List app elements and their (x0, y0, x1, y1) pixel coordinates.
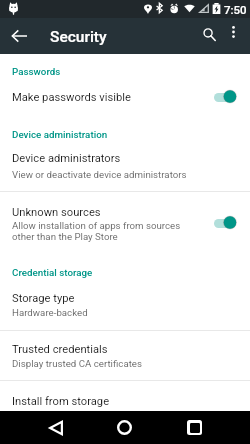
button[interactable]: Unknown sources (12, 206, 101, 219)
button: Passwords (0, 66, 250, 88)
button[interactable]: Storage type (12, 292, 75, 305)
staticText: Passwords (12, 66, 61, 77)
button[interactable]: Make passwords visible (12, 91, 131, 104)
staticText: Allow installation of apps from sources … (12, 220, 181, 243)
button: Credential storage (0, 267, 250, 289)
button[interactable]: Back (36, 411, 76, 444)
button[interactable]: Device administrators (12, 152, 121, 165)
button[interactable]: Toggle (214, 217, 237, 230)
button[interactable]: Toggle (214, 91, 237, 104)
staticText: Device administration (12, 129, 108, 140)
staticText: 7:50 (224, 3, 247, 16)
button[interactable]: Home (104, 411, 144, 444)
button[interactable]: Recent apps (174, 411, 214, 444)
staticText: View or deactivate device administrators (12, 169, 187, 180)
button[interactable]: More options (219, 18, 247, 46)
staticText: Credential storage (12, 267, 93, 278)
button[interactable]: Search (193, 18, 225, 50)
button: Device administration (0, 129, 250, 151)
button[interactable]: Trusted credentials (12, 343, 108, 356)
staticText: Display trusted CA certificates (12, 358, 142, 369)
button[interactable]: Navigate up (1, 18, 37, 54)
staticText: Hardware-backed (12, 307, 88, 318)
staticText: Security (50, 28, 107, 46)
button[interactable]: Install from storage (12, 395, 110, 408)
